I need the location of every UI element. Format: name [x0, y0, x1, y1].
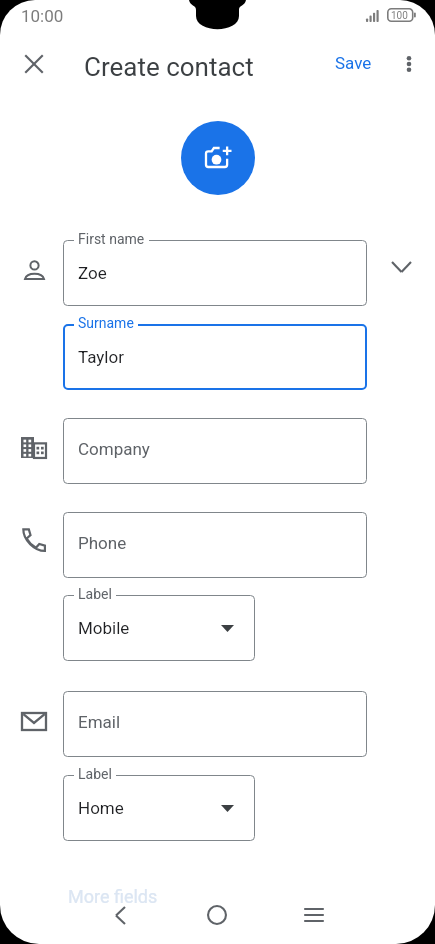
button[interactable]: Label [63, 595, 255, 661]
button[interactable]: Expand name fields [379, 245, 423, 289]
button[interactable]: Label [63, 775, 255, 841]
staticText: Mobile [78, 618, 130, 638]
staticText: Email [78, 712, 121, 732]
staticText: 100 [391, 10, 408, 22]
staticText: Surname [78, 315, 134, 331]
staticText: Label [78, 586, 112, 602]
button[interactable]: More fields [68, 886, 158, 907]
button[interactable]: Close [10, 40, 58, 88]
button[interactable]: Home [193, 891, 241, 939]
button[interactable]: Add photo [181, 121, 255, 195]
button[interactable] [12, 699, 56, 743]
button[interactable]: Email [63, 691, 367, 757]
staticText: Create contact [84, 52, 254, 82]
button[interactable] [12, 248, 56, 292]
staticText: Home [78, 798, 124, 818]
button[interactable] [12, 518, 56, 562]
staticText: Zoe [78, 263, 107, 283]
staticText: First name [78, 231, 145, 247]
button[interactable]: Phone [63, 512, 367, 578]
button[interactable]: Company [63, 418, 367, 484]
staticText: Label [78, 766, 112, 782]
staticText: Phone [78, 533, 127, 553]
button[interactable]: Recent apps [290, 891, 338, 939]
button[interactable]: More options [386, 41, 431, 86]
button[interactable] [11, 425, 55, 469]
staticText: Company [78, 439, 150, 459]
staticText: Taylor [78, 347, 124, 367]
button[interactable]: First name [63, 240, 367, 306]
button[interactable]: Surname [63, 324, 367, 390]
button[interactable]: Save [325, 48, 382, 78]
staticText: 10:00 [21, 6, 64, 26]
staticText: Save [335, 53, 372, 73]
button[interactable]: Back [96, 891, 144, 939]
